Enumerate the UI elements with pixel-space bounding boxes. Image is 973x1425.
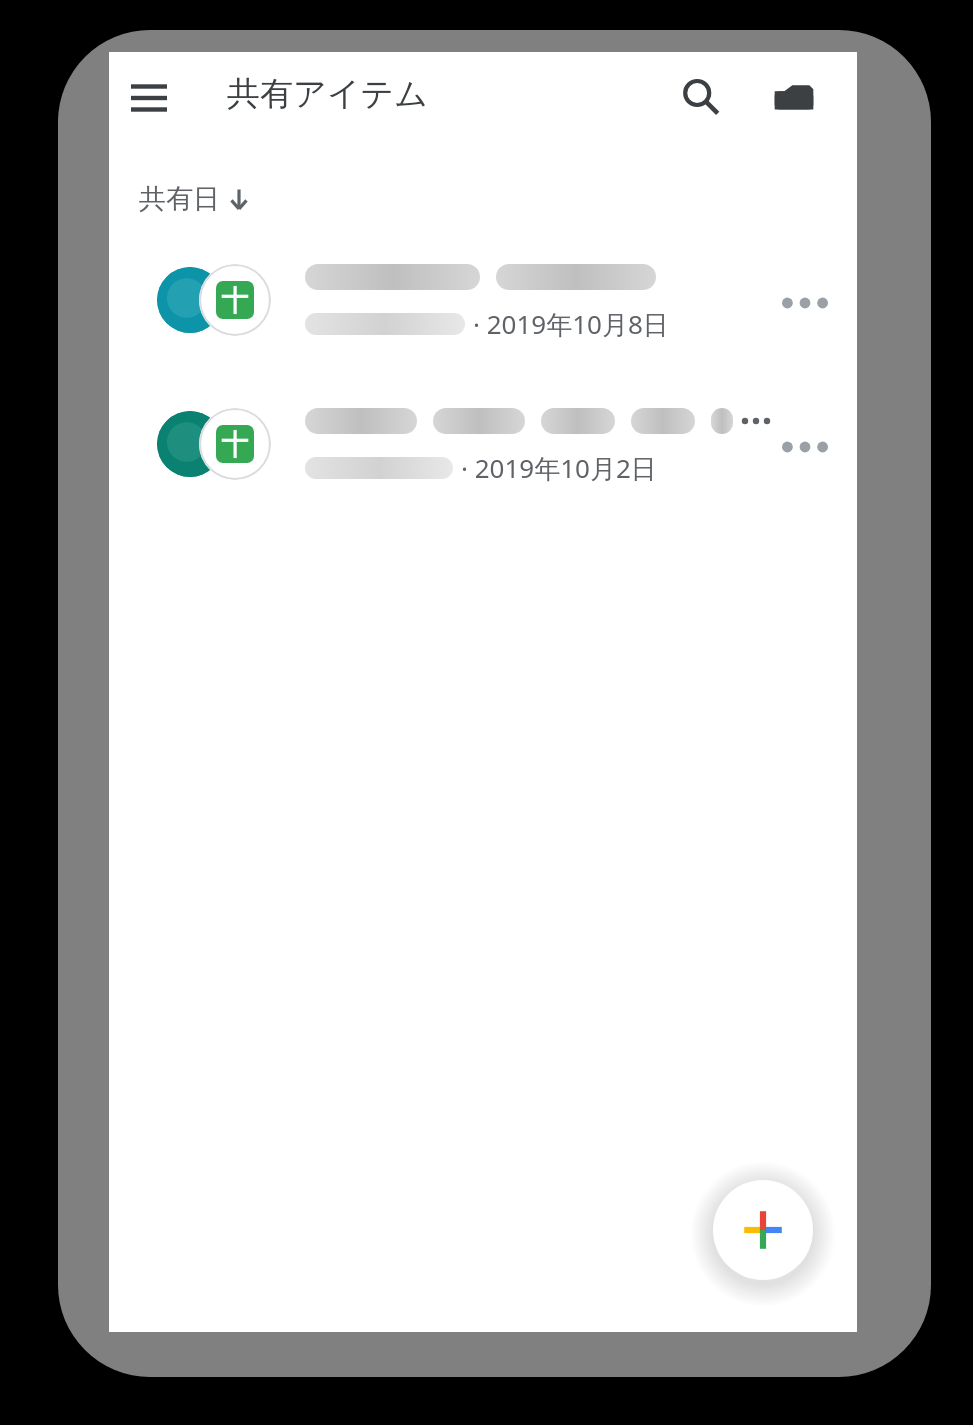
staticText: · 2019年10月8日 (473, 306, 669, 342)
staticText: · 2019年10月2日 (461, 450, 657, 486)
button[interactable]: More options (767, 409, 843, 485)
button[interactable]: 共有日 (133, 178, 258, 220)
button[interactable]: Navigation menu (119, 68, 179, 128)
button[interactable]: · 2019年10月8日 (109, 242, 857, 364)
button[interactable]: My Drive folder (761, 64, 827, 130)
button[interactable]: More options (767, 265, 843, 341)
button[interactable]: Create new (713, 1180, 813, 1280)
button[interactable]: · 2019年10月2日 (109, 386, 857, 508)
button[interactable]: Search (667, 64, 733, 130)
staticText: 共有アイテム (227, 73, 429, 115)
staticText: 共有日 (139, 182, 220, 216)
